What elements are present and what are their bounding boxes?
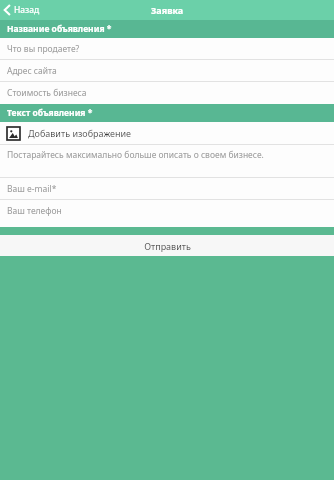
- staticText: Стоимость бизнеса: [7, 87, 87, 99]
- staticText: Ваш телефон: [7, 205, 62, 217]
- button[interactable]: Назад: [0, 0, 46, 20]
- button[interactable]: Постарайтесь максимально больше описать …: [0, 145, 334, 177]
- staticText: Отправить: [144, 240, 191, 252]
- button[interactable]: Что вы продаете?: [0, 38, 334, 59]
- staticText: Адрес сайта: [7, 65, 57, 77]
- button[interactable]: Отправить: [0, 235, 334, 256]
- button[interactable]: Адрес сайта: [0, 60, 334, 81]
- button[interactable]: Ваш e-mail*: [0, 178, 334, 199]
- button[interactable]: Стоимость бизнеса: [0, 82, 334, 104]
- staticText: Добавить изображение: [28, 127, 132, 139]
- staticText: Назад: [14, 4, 40, 16]
- staticText: Постарайтесь максимально больше описать …: [7, 149, 264, 161]
- staticText: Текст объявления *: [7, 107, 93, 119]
- button[interactable]: Ваш телефон: [0, 200, 334, 222]
- staticText: Ваш e-mail*: [7, 183, 57, 195]
- staticText: Заявка: [151, 4, 184, 16]
- button[interactable]: Добавить изображение: [0, 122, 334, 144]
- staticText: Что вы продаете?: [7, 43, 80, 55]
- other: Добавить изображение: [7, 127, 20, 140]
- staticText: Название объявления *: [7, 23, 112, 35]
